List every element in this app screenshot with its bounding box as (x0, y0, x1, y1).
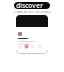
staticText: discover (16, 1, 43, 10)
staticText: A SMARTER APP EXPERIENCE (13, 10, 50, 14)
button[interactable]: discover (14, 2, 50, 9)
